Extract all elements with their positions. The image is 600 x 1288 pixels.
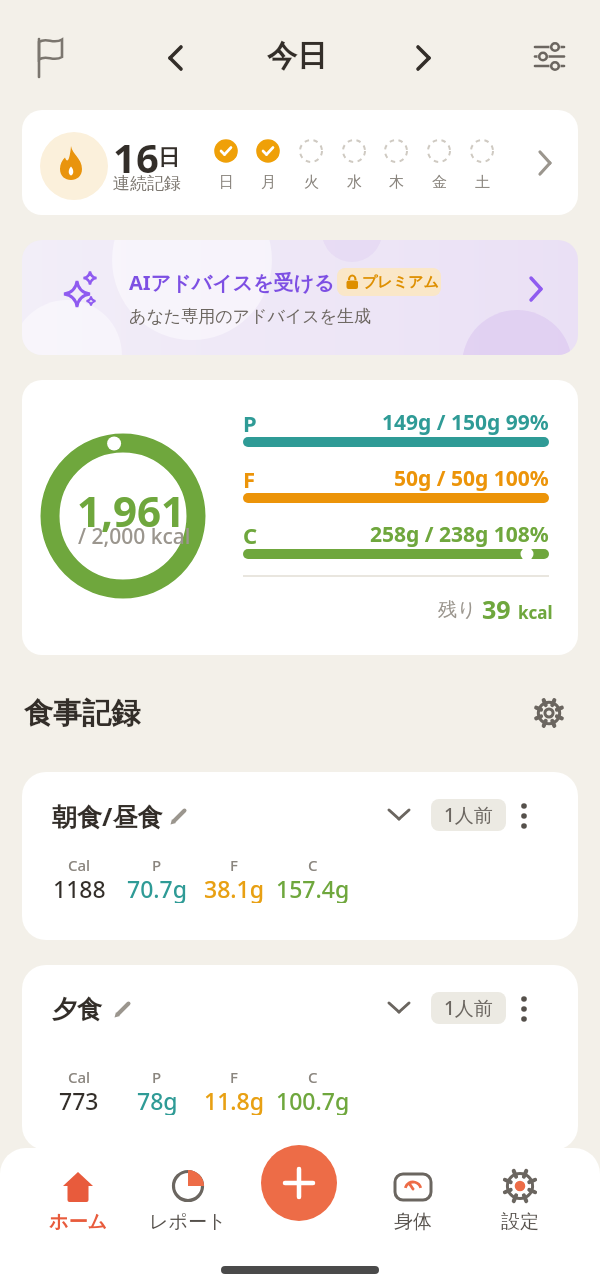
- button[interactable]: [112, 998, 134, 1020]
- staticText: 食事記録: [24, 695, 140, 732]
- button[interactable]: 1人前: [431, 799, 506, 831]
- button[interactable]: [532, 696, 566, 730]
- staticText: 1人前: [444, 995, 493, 1021]
- button[interactable]: 1人前: [431, 992, 506, 1024]
- staticText: 日: [219, 173, 234, 192]
- staticText: kcal: [518, 601, 553, 624]
- staticText: F: [230, 855, 238, 875]
- button[interactable]: [160, 44, 192, 76]
- staticText: 金: [432, 173, 447, 192]
- button[interactable]: [514, 993, 534, 1025]
- button[interactable]: ホーム: [38, 1164, 118, 1236]
- staticText: C: [308, 1067, 318, 1087]
- staticText: 火: [304, 173, 319, 192]
- staticText: 1,961: [77, 482, 186, 534]
- staticText: 1人前: [444, 802, 493, 828]
- staticText: P: [152, 1067, 162, 1087]
- staticText: 連続記録: [113, 173, 181, 194]
- button[interactable]: [261, 1145, 337, 1221]
- staticText: Cal: [68, 855, 91, 875]
- staticText: P: [243, 408, 257, 436]
- staticText: 残り: [438, 598, 477, 622]
- staticText: F: [230, 1067, 238, 1087]
- staticText: 773: [59, 1085, 99, 1115]
- button[interactable]: [168, 805, 190, 827]
- staticText: プレミアム: [362, 273, 439, 292]
- staticText: 夕食: [52, 994, 102, 1025]
- staticText: 朝食/昼食: [52, 799, 163, 833]
- staticText: ホーム: [49, 1210, 107, 1234]
- staticText: 16: [113, 130, 159, 174]
- staticText: 258g / 238g 108%: [370, 520, 549, 548]
- staticText: 39: [482, 592, 511, 624]
- staticText: C: [243, 520, 258, 548]
- button[interactable]: [385, 802, 413, 826]
- staticText: 水: [347, 173, 362, 192]
- staticText: 157.4g: [276, 873, 350, 903]
- button[interactable]: 16: [22, 110, 578, 215]
- staticText: C: [308, 855, 318, 875]
- staticText: 11.8g: [204, 1085, 264, 1115]
- staticText: 今日: [267, 37, 327, 75]
- button[interactable]: 1,961: [22, 380, 578, 655]
- button[interactable]: [530, 40, 570, 74]
- button[interactable]: 設定: [480, 1164, 560, 1236]
- staticText: Cal: [68, 1067, 91, 1087]
- staticText: 身体: [394, 1210, 432, 1234]
- button[interactable]: AIアドバイスを受ける: [22, 240, 578, 355]
- button[interactable]: [385, 995, 413, 1019]
- button[interactable]: [30, 34, 74, 80]
- staticText: / 2,000 kcal: [78, 522, 191, 550]
- staticText: 月: [261, 173, 276, 192]
- staticText: 38.1g: [204, 873, 264, 903]
- staticText: 100.7g: [276, 1085, 350, 1115]
- staticText: 日: [158, 144, 180, 172]
- button[interactable]: [407, 44, 439, 76]
- staticText: 149g / 150g 99%: [382, 408, 549, 436]
- staticText: AIアドバイスを受ける: [129, 269, 335, 296]
- staticText: 木: [389, 173, 404, 192]
- staticText: 78g: [137, 1085, 178, 1115]
- button[interactable]: 身体: [373, 1164, 453, 1236]
- button[interactable]: レポート: [143, 1164, 233, 1236]
- staticText: 1188: [53, 873, 106, 903]
- staticText: 設定: [501, 1210, 539, 1234]
- staticText: あなた専用のアドバイスを生成: [129, 306, 371, 327]
- staticText: F: [243, 464, 256, 492]
- staticText: 70.7g: [127, 873, 187, 903]
- staticText: 土: [475, 173, 490, 192]
- staticText: 50g / 50g 100%: [394, 464, 549, 492]
- button[interactable]: [514, 800, 534, 832]
- staticText: P: [152, 855, 162, 875]
- staticText: レポート: [149, 1210, 227, 1234]
